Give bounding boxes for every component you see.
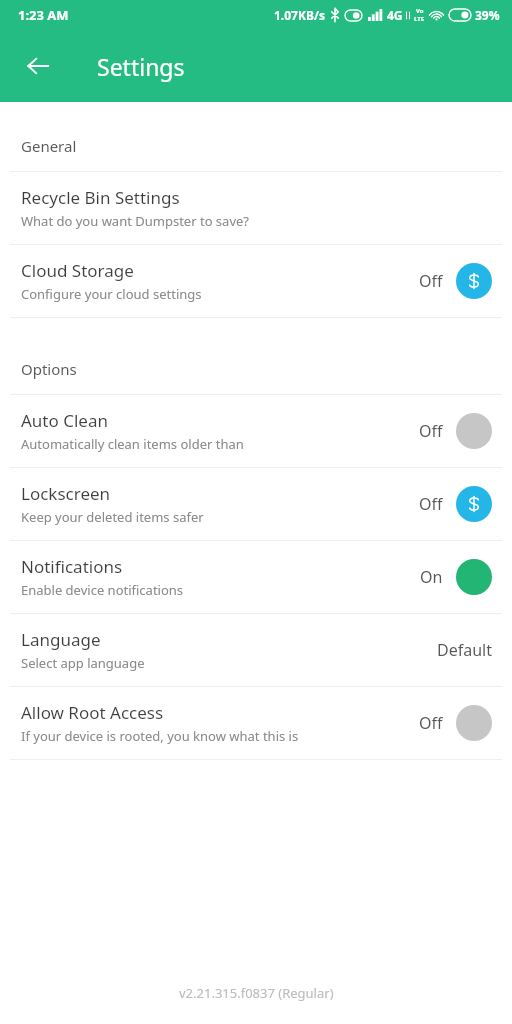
staticText: v2.21.315.f0837 (Regular) xyxy=(179,984,334,1002)
staticText: Off xyxy=(419,712,443,734)
staticText: Allow Root Access xyxy=(21,701,164,724)
staticText: Notifications xyxy=(21,555,123,578)
staticText: Enable device notifications xyxy=(21,581,184,599)
staticText: 1.07KB/s xyxy=(274,7,325,23)
staticText: Vo xyxy=(416,7,424,15)
staticText: Options xyxy=(21,359,77,379)
staticText: Default xyxy=(437,639,492,661)
staticText: Settings xyxy=(97,51,185,82)
staticText: What do you want Dumpster to save? xyxy=(21,212,249,230)
button[interactable]: Cloud Storage xyxy=(0,245,512,317)
staticText: Configure your cloud settings xyxy=(21,285,202,303)
staticText: Automatically clean items older than xyxy=(21,435,244,453)
staticText: Select app language xyxy=(21,654,145,672)
staticText: 39% xyxy=(475,7,500,23)
staticText: On xyxy=(420,566,443,588)
staticText: Recycle Bin Settings xyxy=(21,186,180,209)
button[interactable]: Back xyxy=(14,42,62,90)
staticText: Cloud Storage xyxy=(21,259,134,282)
staticText: Off xyxy=(419,270,443,292)
staticText: Keep your deleted items safer xyxy=(21,508,204,526)
button[interactable]: Allow Root Access xyxy=(0,687,512,759)
staticText: LTE xyxy=(414,15,425,23)
button[interactable]: Recycle Bin Settings xyxy=(0,172,512,244)
staticText: Language xyxy=(21,628,101,651)
staticText: Off xyxy=(419,493,443,515)
button[interactable]: Lockscreen xyxy=(0,468,512,540)
staticText: Auto Clean xyxy=(21,409,108,432)
staticText: General xyxy=(21,136,77,156)
staticText: 1:23 AM xyxy=(18,6,69,24)
staticText: Off xyxy=(419,420,443,442)
staticText: If your device is rooted, you know what … xyxy=(21,727,299,745)
staticText: Lockscreen xyxy=(21,482,111,505)
button[interactable]: Notifications xyxy=(0,541,512,613)
button[interactable]: Auto Clean xyxy=(0,395,512,467)
button[interactable]: Language xyxy=(0,614,512,686)
staticText: 4G xyxy=(387,7,403,23)
